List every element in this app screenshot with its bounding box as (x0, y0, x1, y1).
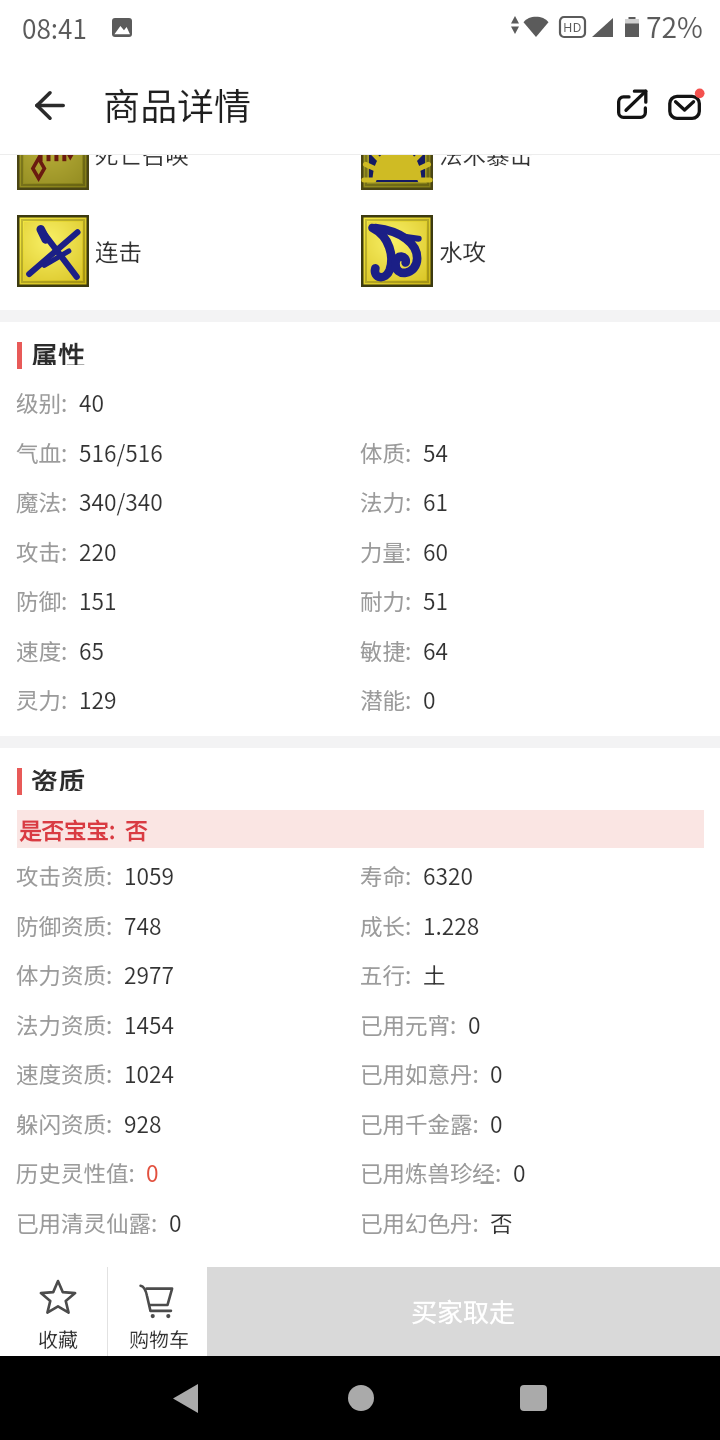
staticText: 64 (423, 634, 448, 667)
staticText: 法力: (360, 485, 412, 518)
staticText: 气血: (16, 436, 68, 469)
staticText: 连击 (95, 234, 142, 268)
staticText: 151 (79, 584, 117, 617)
staticText: 0 (146, 1156, 159, 1189)
staticText: 力量: (360, 535, 412, 568)
staticText: 65 (79, 634, 104, 667)
staticText: 340/340 (79, 485, 163, 518)
button[interactable]: 连击 (17, 215, 307, 287)
staticText: 已用炼兽珍经: (360, 1156, 502, 1189)
staticText: 0 (490, 1057, 503, 1090)
staticText: 水攻 (439, 234, 486, 268)
staticText: 购物车 (129, 1324, 189, 1353)
staticText: 体质: (360, 436, 412, 469)
staticText: 躲闪资质: (16, 1107, 113, 1140)
staticText: 否 (490, 1206, 513, 1239)
button[interactable]: Recents (509, 1374, 557, 1422)
staticText: 1454 (124, 1008, 174, 1041)
staticText: 魔法: (16, 485, 68, 518)
staticText: 攻击资质: (16, 859, 113, 892)
button[interactable]: 水攻 (361, 215, 651, 287)
staticText: 法术暴击 (439, 155, 533, 171)
staticText: 体力资质: (16, 958, 113, 991)
staticText: 220 (79, 535, 117, 568)
staticText: 129 (79, 683, 117, 716)
staticText: 成长: (360, 909, 412, 942)
staticText: 资质 (31, 761, 85, 791)
staticText: 0 (169, 1206, 182, 1239)
staticText: 已用清灵仙露: (16, 1206, 158, 1239)
staticText: 已用幻色丹: (360, 1206, 479, 1239)
button[interactable]: 买家取走 (207, 1267, 720, 1356)
staticText: 敏捷: (360, 634, 412, 667)
staticText: 08:41 (22, 9, 87, 47)
button[interactable]: 法术暴击 (361, 155, 651, 190)
button[interactable]: Home (337, 1374, 385, 1422)
staticText: 级别: (16, 386, 68, 419)
staticText: 法力资质: (16, 1008, 113, 1041)
staticText: 灵力: (16, 683, 68, 716)
staticText: 防御资质: (16, 909, 113, 942)
staticText: 防御: (16, 584, 68, 617)
button[interactable]: Back (161, 1374, 209, 1422)
button[interactable]: Share (603, 75, 661, 133)
staticText: 0 (423, 683, 436, 716)
staticText: 已用如意丹: (360, 1057, 479, 1090)
staticText: 1.228 (423, 909, 480, 942)
staticText: 属性 (31, 335, 85, 365)
button[interactable]: 死亡召唤 (17, 155, 307, 190)
staticText: 1024 (124, 1057, 174, 1090)
staticText: 516/516 (79, 436, 163, 469)
staticText: 五行: (360, 958, 412, 991)
staticText: 928 (124, 1107, 162, 1140)
button[interactable]: 收藏 (0, 1267, 107, 1356)
staticText: 历史灵性值: (16, 1156, 135, 1189)
staticText: 61 (423, 485, 448, 518)
staticText: 是否宝宝: 否 (19, 813, 148, 846)
staticText: 0 (490, 1107, 503, 1140)
staticText: 54 (423, 436, 448, 469)
staticText: 耐力: (360, 584, 412, 617)
staticText: 速度: (16, 634, 68, 667)
staticText: 748 (124, 909, 162, 942)
staticText: 72% (646, 6, 703, 47)
button[interactable]: Back (20, 75, 80, 135)
staticText: 潜能: (360, 683, 412, 716)
button[interactable]: Messages (657, 78, 715, 136)
staticText: 已用千金露: (360, 1107, 479, 1140)
button[interactable]: 购物车 (108, 1267, 207, 1356)
staticText: 买家取走 (411, 1292, 516, 1330)
staticText: 60 (423, 535, 448, 568)
staticText: 死亡召唤 (95, 155, 189, 171)
staticText: 攻击: (16, 535, 68, 568)
staticText: 2977 (124, 958, 174, 991)
staticText: 速度资质: (16, 1057, 113, 1090)
staticText: 0 (468, 1008, 481, 1041)
staticText: 寿命: (360, 859, 412, 892)
staticText: 收藏 (38, 1324, 78, 1353)
staticText: 51 (423, 584, 448, 617)
staticText: HD (563, 17, 582, 36)
staticText: 1059 (124, 859, 174, 892)
staticText: 已用元宵: (360, 1008, 457, 1041)
staticText: 商品详情 (103, 77, 251, 131)
staticText: 土 (423, 958, 446, 991)
staticText: 0 (513, 1156, 526, 1189)
staticText: 40 (79, 386, 104, 419)
staticText: 6320 (423, 859, 473, 892)
